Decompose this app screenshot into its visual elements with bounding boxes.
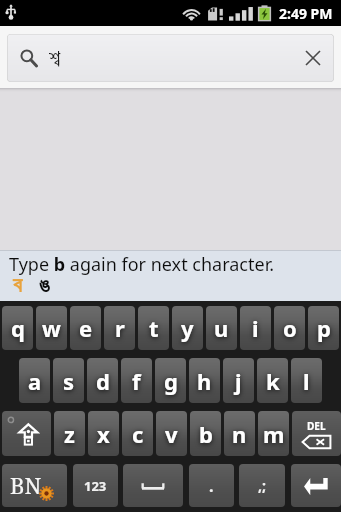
staticText: . (209, 475, 214, 497)
staticText: ঙ (39, 274, 50, 296)
staticText: q (11, 313, 25, 343)
staticText: i (252, 313, 259, 343)
button[interactable]: t (138, 306, 169, 350)
button[interactable]: Shift (2, 411, 51, 456)
staticText: g (164, 366, 178, 396)
button[interactable]: f (121, 358, 152, 403)
staticText: DEL (307, 419, 326, 433)
button[interactable]: d (87, 358, 118, 403)
staticText: y (181, 313, 194, 343)
button[interactable]: h (189, 358, 220, 403)
button[interactable]: . (189, 464, 234, 507)
staticText: f (132, 366, 141, 396)
button[interactable]: ব (13, 274, 22, 296)
staticText: Type b again for next character. (9, 252, 275, 277)
button[interactable]: Delete (292, 411, 341, 456)
staticText: m (263, 419, 285, 449)
button[interactable]: y (172, 306, 203, 350)
staticText: h (197, 366, 212, 396)
button[interactable]: q (2, 306, 33, 350)
button[interactable]: i (240, 306, 271, 350)
staticText: 2:49 PM (279, 4, 333, 23)
button[interactable]: n (224, 411, 255, 456)
staticText: b (199, 419, 213, 449)
staticText: ব (13, 274, 22, 296)
button[interactable]: w (36, 306, 67, 350)
staticText: o (283, 313, 297, 343)
staticText: u (214, 313, 229, 343)
button[interactable]: g (155, 358, 186, 403)
staticText: v (165, 419, 178, 449)
button[interactable]: l (291, 358, 322, 403)
staticText: a (28, 366, 42, 396)
button[interactable]: Search (7, 34, 334, 82)
button[interactable]: c (122, 411, 153, 456)
button[interactable]: j (223, 358, 254, 403)
staticText: e (79, 313, 93, 343)
button[interactable]: 123 (73, 464, 118, 507)
button[interactable]: e (70, 306, 101, 350)
staticText: x (97, 419, 110, 449)
button[interactable]: o (274, 306, 305, 350)
staticText: s (63, 366, 75, 396)
staticText: d (96, 366, 110, 396)
staticText: j (235, 366, 242, 396)
staticText: z (64, 419, 75, 449)
button[interactable]: Space (123, 464, 183, 507)
other: Search (20, 49, 38, 67)
other: USB connected (4, 4, 18, 20)
button[interactable]: Bengali layout (2, 464, 67, 507)
button[interactable]: k (257, 358, 288, 403)
staticText: ,; (258, 476, 266, 495)
button[interactable]: u (206, 306, 237, 350)
staticText: w (42, 313, 61, 343)
button[interactable]: p (308, 306, 339, 350)
button[interactable]: Enter (291, 464, 341, 507)
button[interactable]: m (258, 411, 289, 456)
staticText: n (232, 419, 247, 449)
button[interactable]: ,; (239, 464, 285, 507)
button[interactable]: r (104, 306, 135, 350)
button[interactable]: a (19, 358, 50, 403)
button[interactable]: Clear search (298, 35, 328, 81)
staticText: t (149, 313, 159, 343)
button[interactable]: ঙ (39, 274, 50, 296)
staticText: BN (10, 470, 42, 500)
staticText: শ্ব (49, 47, 61, 69)
staticText: c (132, 419, 144, 449)
staticText: r (115, 313, 125, 343)
button[interactable]: b (190, 411, 221, 456)
button[interactable]: x (88, 411, 119, 456)
staticText: 123 (84, 477, 107, 495)
staticText: p (317, 313, 331, 343)
staticText: l (303, 366, 310, 396)
button[interactable]: z (54, 411, 85, 456)
button[interactable]: v (156, 411, 187, 456)
button[interactable]: s (53, 358, 84, 403)
staticText: k (266, 366, 280, 396)
